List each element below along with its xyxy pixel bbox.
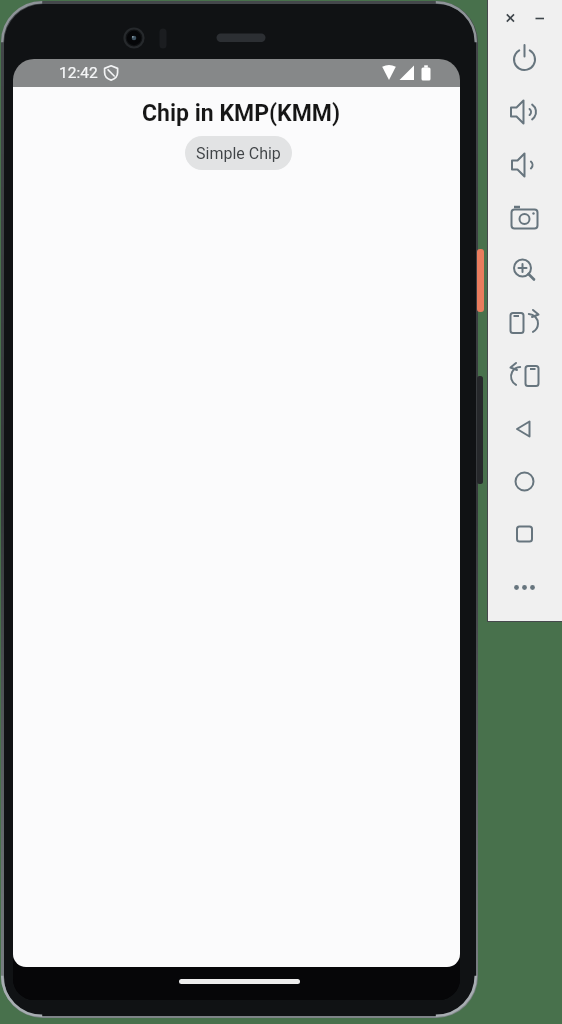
- staticText: 12:42: [59, 64, 98, 82]
- staticText: Simple Chip: [196, 144, 281, 163]
- staticText: Chip in KMP(KMM): [142, 100, 341, 127]
